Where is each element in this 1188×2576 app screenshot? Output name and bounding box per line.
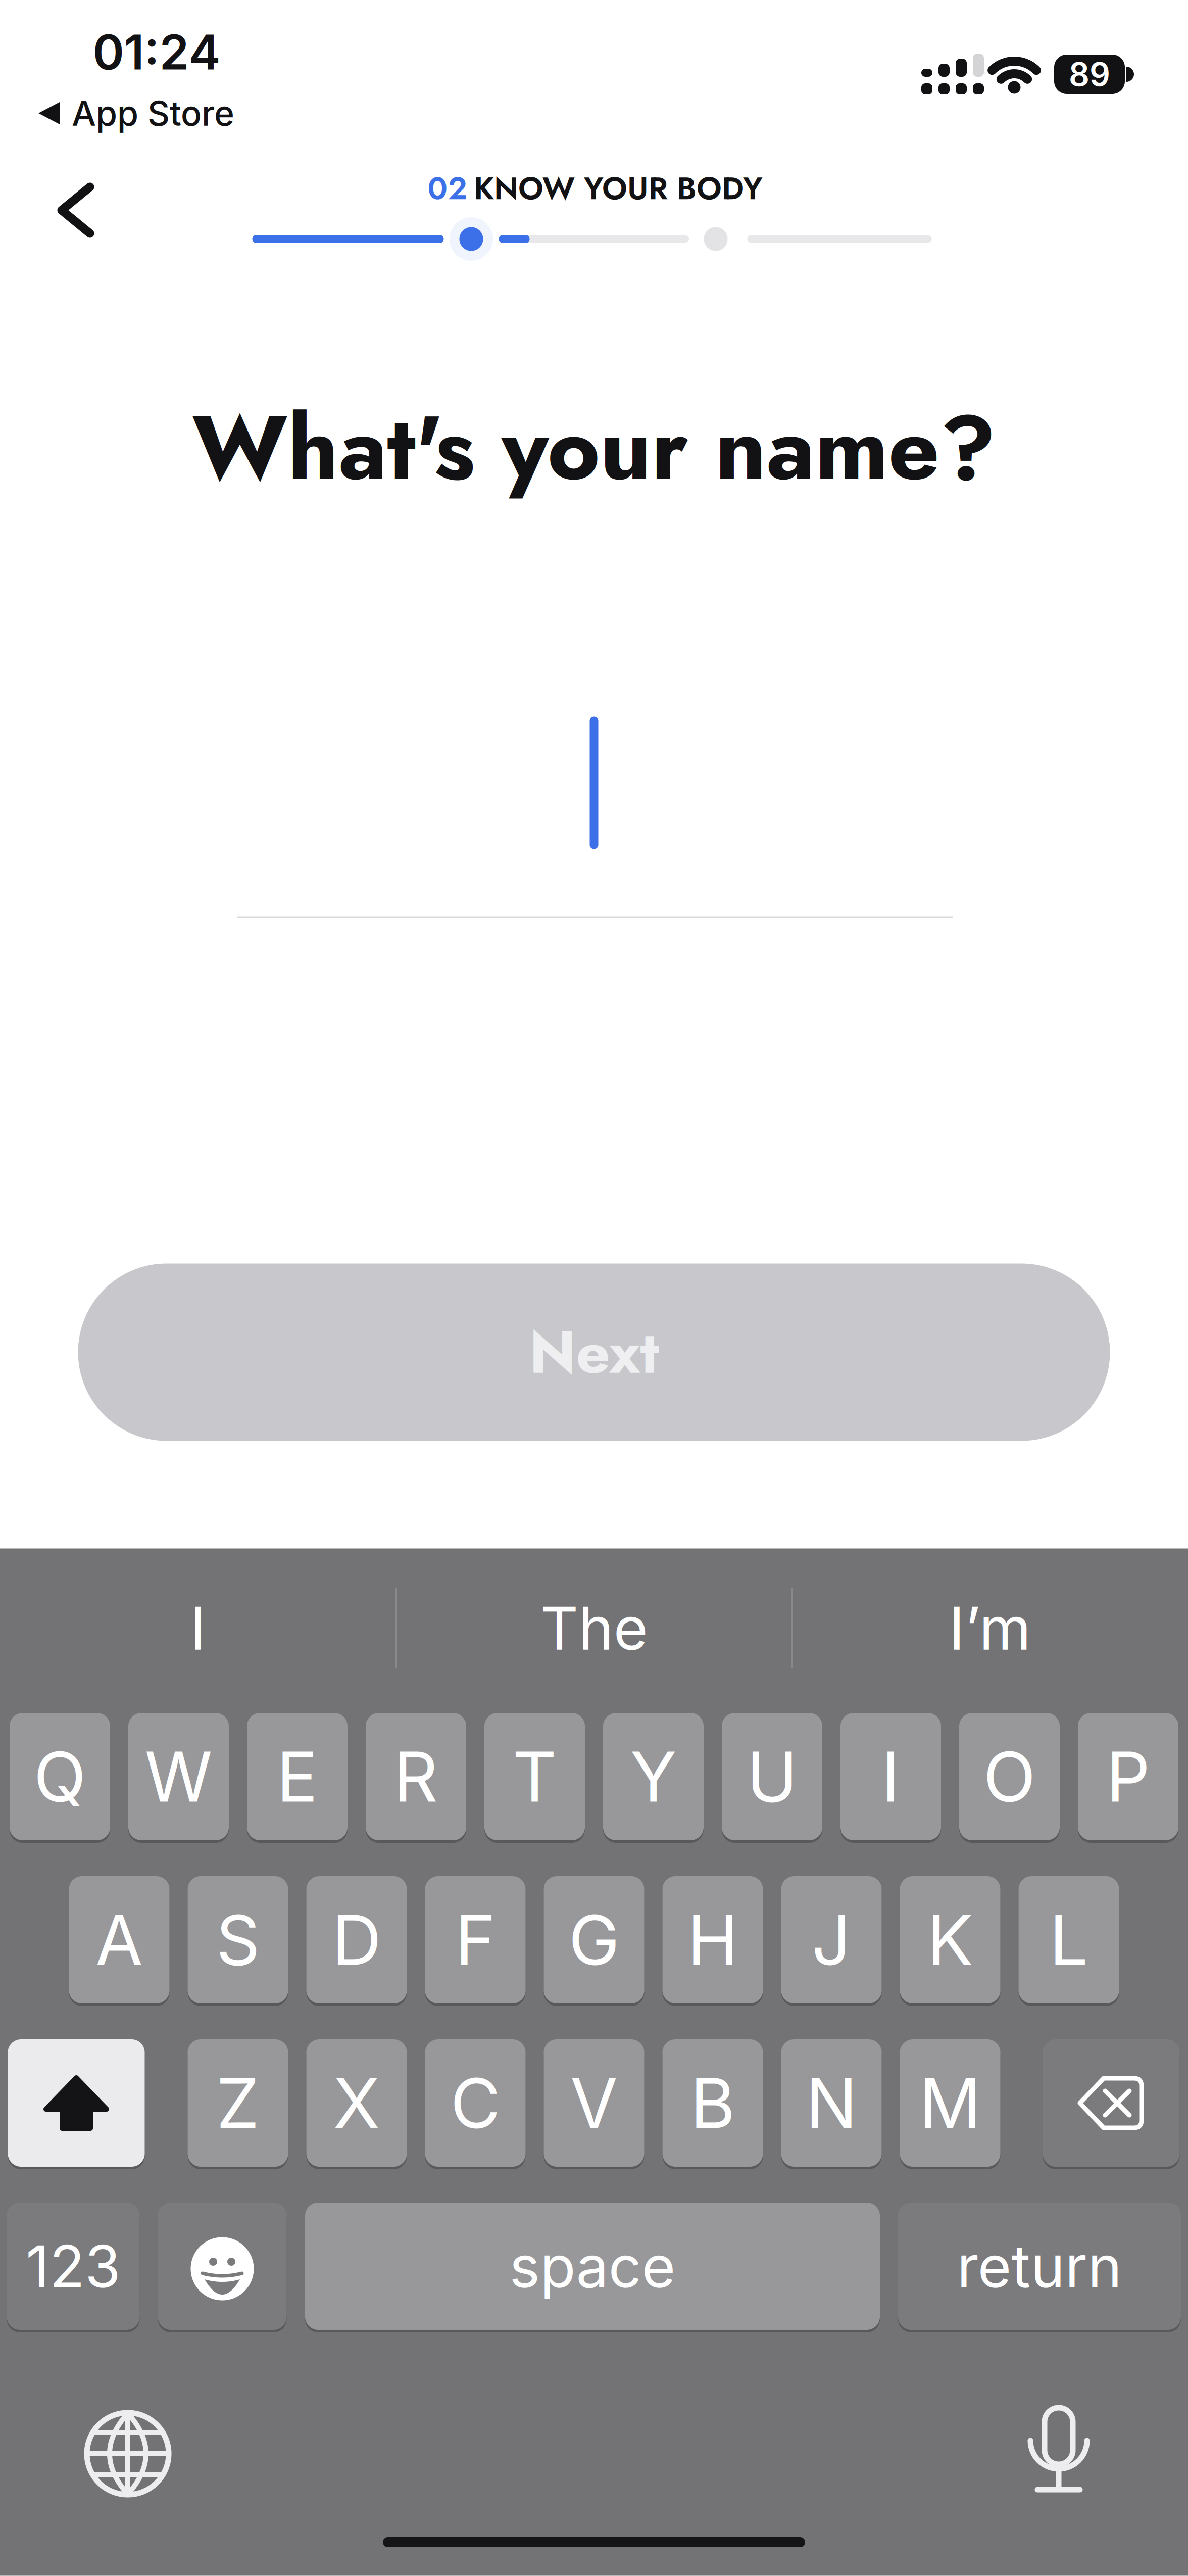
button[interactable]: Dictate: [1028, 2406, 1089, 2495]
staticText: U: [747, 1735, 798, 1818]
button[interactable]: K: [900, 1875, 1000, 2005]
button[interactable]: Delete: [1043, 2038, 1180, 2168]
button[interactable]: Y: [603, 1712, 704, 1842]
button[interactable]: Emoji: [158, 2201, 287, 2331]
button[interactable]: D: [306, 1875, 407, 2005]
button[interactable]: J: [781, 1875, 882, 2005]
button[interactable]: Z: [188, 2038, 288, 2168]
staticText: space: [509, 2231, 676, 2301]
staticText: The: [540, 1592, 648, 1664]
button[interactable]: F: [425, 1875, 526, 2005]
button[interactable]: Next keyboard: [82, 2408, 173, 2499]
button[interactable]: S: [188, 1875, 288, 2005]
staticText: B: [690, 2061, 735, 2145]
staticText: E: [277, 1735, 318, 1818]
button[interactable]: B: [662, 2038, 763, 2168]
staticText: 01:24: [93, 23, 220, 81]
button[interactable]: I’m: [813, 1567, 1167, 1689]
staticText: Next: [529, 1309, 659, 1395]
staticText: 02: [428, 166, 467, 211]
staticText: X: [333, 2061, 380, 2145]
staticText: I’m: [949, 1592, 1031, 1664]
button[interactable]: C: [425, 2038, 526, 2168]
button[interactable]: return: [898, 2201, 1181, 2331]
staticText: W: [145, 1735, 212, 1818]
staticText: F: [455, 1898, 496, 1981]
staticText: App Store: [72, 92, 234, 134]
staticText: R: [394, 1735, 438, 1818]
button[interactable]: Next: [78, 1263, 1110, 1441]
staticText: S: [216, 1898, 260, 1981]
button[interactable]: Shift: [8, 2038, 145, 2168]
staticText: K: [927, 1898, 973, 1981]
button[interactable]: G: [544, 1875, 644, 2005]
button[interactable]: N: [781, 2038, 882, 2168]
staticText: T: [512, 1735, 557, 1818]
button[interactable]: Q: [10, 1712, 110, 1842]
staticText: L: [1049, 1898, 1088, 1981]
button[interactable]: H: [662, 1875, 763, 2005]
button[interactable]: W: [128, 1712, 229, 1842]
staticText: I: [881, 1735, 900, 1818]
staticText: KNOW YOUR BODY: [474, 166, 763, 211]
staticText: J: [812, 1898, 851, 1981]
button[interactable]: Numbers: [7, 2201, 140, 2331]
button[interactable]: M: [900, 2038, 1000, 2168]
staticText: M: [919, 2061, 981, 2145]
staticText: O: [983, 1735, 1036, 1818]
staticText: What's your name?: [192, 383, 996, 512]
staticText: H: [687, 1898, 738, 1981]
staticText: return: [957, 2231, 1122, 2301]
staticText: Q: [34, 1735, 86, 1818]
staticText: P: [1106, 1735, 1150, 1818]
staticText: N: [806, 2061, 857, 2145]
button[interactable]: I: [840, 1712, 941, 1842]
button[interactable]: Back: [59, 185, 99, 235]
staticText: I: [190, 1592, 206, 1664]
button[interactable]: A: [69, 1875, 169, 2005]
button[interactable]: O: [959, 1712, 1060, 1842]
button[interactable]: I: [21, 1567, 375, 1689]
staticText: Z: [216, 2061, 260, 2145]
staticText: 123: [26, 2231, 121, 2301]
staticText: V: [570, 2061, 618, 2145]
button[interactable]: V: [544, 2038, 644, 2168]
button[interactable]: T: [484, 1712, 585, 1842]
button[interactable]: Back to App Store: [38, 92, 234, 134]
staticText: A: [95, 1898, 143, 1981]
staticText: D: [332, 1898, 381, 1981]
staticText: C: [450, 2061, 500, 2145]
button[interactable]: L: [1019, 1875, 1119, 2005]
button[interactable]: P: [1078, 1712, 1178, 1842]
button[interactable]: R: [366, 1712, 466, 1842]
button[interactable]: E: [247, 1712, 348, 1842]
button[interactable]: X: [306, 2038, 407, 2168]
staticText: G: [568, 1898, 620, 1981]
staticText: 89: [1069, 55, 1110, 94]
button[interactable]: U: [722, 1712, 822, 1842]
staticText: Y: [630, 1735, 677, 1818]
button[interactable]: The: [417, 1567, 771, 1689]
button[interactable]: space: [305, 2201, 880, 2331]
